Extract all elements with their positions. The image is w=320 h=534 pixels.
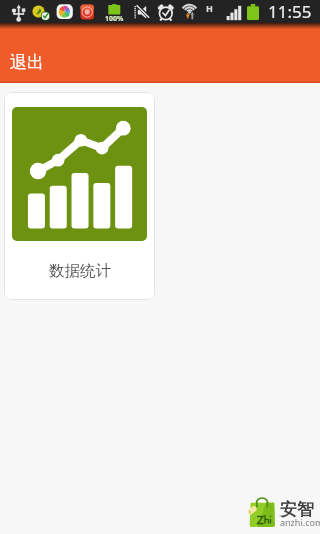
button[interactable]: 退出 <box>0 48 54 77</box>
staticText: 退出 <box>10 52 44 73</box>
staticText: 11:55 <box>268 0 312 23</box>
staticText: H <box>206 2 213 14</box>
staticText: anzhi.com <box>280 516 320 528</box>
staticText: 100% <box>105 14 124 24</box>
staticText: 数据统计 <box>49 261 111 281</box>
button[interactable]: 数据统计 <box>4 92 155 300</box>
staticText: 安智 <box>280 499 314 520</box>
